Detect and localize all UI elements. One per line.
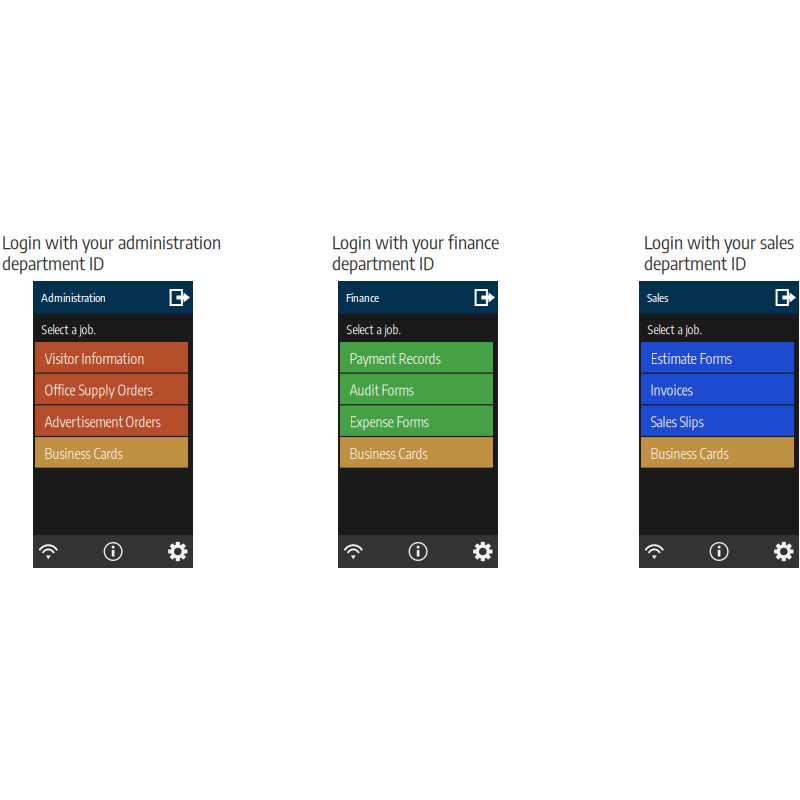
staticText: Login with your administration xyxy=(2,230,221,253)
staticText: Administration xyxy=(41,290,106,304)
button[interactable]: Log out xyxy=(776,289,796,306)
staticText: Business Cards xyxy=(45,445,123,462)
staticText: Login with your sales xyxy=(644,230,794,253)
staticText: Select a job. xyxy=(41,322,95,337)
staticText: Office Supply Orders xyxy=(45,381,153,399)
button[interactable]: Log out xyxy=(170,289,190,306)
button[interactable]: Invoices xyxy=(641,374,794,404)
button[interactable]: Advertisement Orders xyxy=(35,405,188,436)
button[interactable]: Business Cards xyxy=(641,437,794,468)
staticText: department ID xyxy=(332,251,434,274)
staticText: Select a job. xyxy=(647,322,701,337)
button[interactable]: Information xyxy=(408,535,428,568)
staticText: Visitor Information xyxy=(45,349,145,367)
staticText: Expense Forms xyxy=(350,413,429,430)
button[interactable]: Visitor Information xyxy=(35,342,188,372)
staticText: Login with your finance xyxy=(332,230,499,253)
button[interactable]: Payment Records xyxy=(340,342,493,372)
staticText: Business Cards xyxy=(651,445,729,462)
button[interactable]: Audit Forms xyxy=(340,374,493,404)
button[interactable]: Business Cards xyxy=(35,437,188,468)
button[interactable]: Information xyxy=(103,535,123,568)
staticText: Invoices xyxy=(651,381,693,399)
staticText: department ID xyxy=(2,251,104,274)
button[interactable]: Settings xyxy=(163,535,193,568)
button[interactable]: Information xyxy=(709,535,729,568)
staticText: department ID xyxy=(644,251,746,274)
button[interactable]: Network xyxy=(33,535,64,568)
button[interactable]: Sales Slips xyxy=(641,405,794,436)
button[interactable]: Settings xyxy=(468,535,498,568)
staticText: Select a job. xyxy=(346,322,400,337)
button[interactable]: Network xyxy=(639,535,670,568)
staticText: Finance xyxy=(346,290,379,304)
button[interactable]: Network xyxy=(338,535,369,568)
staticText: Payment Records xyxy=(350,349,441,367)
button[interactable]: Office Supply Orders xyxy=(35,374,188,404)
staticText: Business Cards xyxy=(350,445,428,462)
button[interactable]: Log out xyxy=(475,289,495,306)
staticText: Audit Forms xyxy=(350,381,414,399)
button[interactable]: Expense Forms xyxy=(340,405,493,436)
button[interactable]: Settings xyxy=(769,535,799,568)
staticText: Sales Slips xyxy=(651,413,704,430)
staticText: Estimate Forms xyxy=(651,349,732,367)
staticText: Sales xyxy=(647,290,668,304)
staticText: Advertisement Orders xyxy=(45,413,161,430)
button[interactable]: Estimate Forms xyxy=(641,342,794,372)
button[interactable]: Business Cards xyxy=(340,437,493,468)
